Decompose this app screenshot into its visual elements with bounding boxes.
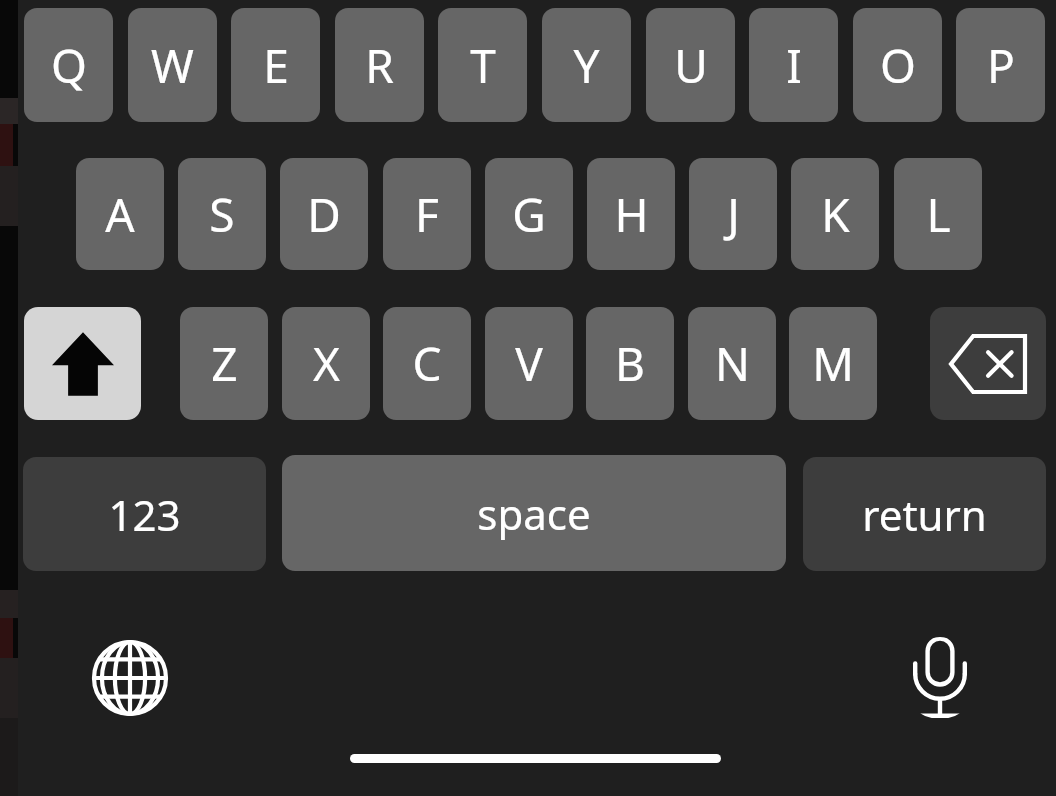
- button[interactable]: X: [282, 307, 370, 420]
- button[interactable]: C: [383, 307, 471, 420]
- button[interactable]: E: [231, 8, 320, 122]
- staticText: Q: [51, 34, 87, 97]
- staticText: B: [615, 332, 645, 395]
- button[interactable]: Y: [542, 8, 631, 122]
- button[interactable]: A: [76, 158, 164, 270]
- button[interactable]: I: [749, 8, 838, 122]
- button[interactable]: G: [485, 158, 573, 270]
- button[interactable]: O: [853, 8, 942, 122]
- staticText: E: [263, 34, 289, 97]
- button[interactable]: J: [689, 158, 777, 270]
- staticText: P: [987, 34, 1015, 97]
- button[interactable]: Z: [180, 307, 268, 420]
- button[interactable]: B: [586, 307, 674, 420]
- staticText: return: [862, 486, 987, 543]
- staticText: T: [470, 34, 496, 97]
- staticText: F: [415, 183, 439, 246]
- button[interactable]: return: [803, 457, 1046, 571]
- button[interactable]: P: [956, 8, 1045, 122]
- button[interactable]: M: [789, 307, 877, 420]
- button[interactable]: H: [587, 158, 675, 270]
- staticText: J: [727, 183, 740, 246]
- staticText: M: [812, 332, 854, 395]
- staticText: U: [674, 34, 708, 97]
- button[interactable]: V: [485, 307, 573, 420]
- staticText: Z: [211, 332, 238, 395]
- staticText: C: [412, 332, 442, 395]
- staticText: W: [151, 34, 194, 97]
- staticText: space: [477, 485, 591, 542]
- staticText: A: [105, 183, 135, 246]
- button[interactable]: N: [688, 307, 776, 420]
- button[interactable]: L: [894, 158, 982, 270]
- button[interactable]: Switch keyboard: [91, 639, 169, 717]
- staticText: S: [209, 183, 235, 246]
- button[interactable]: Q: [24, 8, 113, 122]
- staticText: I: [786, 34, 802, 97]
- staticText: G: [512, 183, 546, 246]
- staticText: N: [715, 332, 750, 395]
- staticText: 123: [108, 486, 181, 543]
- button[interactable]: 123: [23, 457, 266, 571]
- staticText: K: [821, 183, 850, 246]
- staticText: R: [365, 34, 394, 97]
- button[interactable]: D: [280, 158, 368, 270]
- button[interactable]: space: [282, 455, 786, 571]
- button[interactable]: U: [646, 8, 735, 122]
- staticText: Y: [573, 34, 600, 97]
- button[interactable]: K: [791, 158, 879, 270]
- staticText: O: [880, 34, 916, 97]
- button[interactable]: F: [383, 158, 471, 270]
- button[interactable]: Backspace: [930, 307, 1046, 420]
- button[interactable]: R: [335, 8, 424, 122]
- button[interactable]: Dictation: [901, 637, 979, 719]
- button[interactable]: Shift: [24, 307, 141, 420]
- staticText: D: [307, 183, 341, 246]
- staticText: L: [926, 183, 951, 246]
- staticText: H: [614, 183, 649, 246]
- button[interactable]: W: [128, 8, 217, 122]
- staticText: V: [515, 332, 543, 395]
- button[interactable]: T: [438, 8, 527, 122]
- staticText: X: [313, 332, 340, 395]
- button[interactable]: S: [178, 158, 266, 270]
